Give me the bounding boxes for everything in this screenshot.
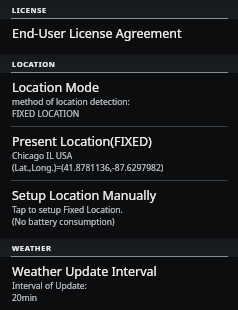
staticText: Weather Update Interval	[12, 263, 157, 280]
button[interactable]: Present Location(FIXED)	[0, 127, 238, 180]
button[interactable]: End-User License Agreement	[0, 19, 238, 48]
staticText: Tap to setup Fixed Location.	[12, 204, 123, 216]
staticText: Setup Location Manually	[12, 187, 157, 204]
staticText: WEATHER	[12, 243, 52, 253]
staticText: (No battery consumption)	[12, 216, 115, 228]
button[interactable]: Weather Update Interval	[0, 257, 238, 310]
button[interactable]: Setup Location Manually	[0, 181, 238, 234]
button[interactable]: Location Mode	[0, 73, 238, 126]
staticText: FIXED LOCATION	[12, 108, 80, 120]
staticText: (Lat.,Long.)=(41.8781136,-87.6297982)	[12, 162, 164, 174]
staticText: LOCATION	[12, 59, 56, 69]
staticText: Present Location(FIXED)	[12, 133, 152, 150]
staticText: End-User License Agreement	[12, 25, 182, 42]
staticText: Interval of Update:	[12, 280, 87, 292]
staticText: Chicago IL USA	[12, 150, 73, 162]
staticText: 20min	[12, 292, 38, 304]
staticText: LICENSE	[12, 5, 47, 15]
staticText: Location Mode	[12, 79, 100, 96]
staticText: method of location detection:	[12, 96, 130, 108]
